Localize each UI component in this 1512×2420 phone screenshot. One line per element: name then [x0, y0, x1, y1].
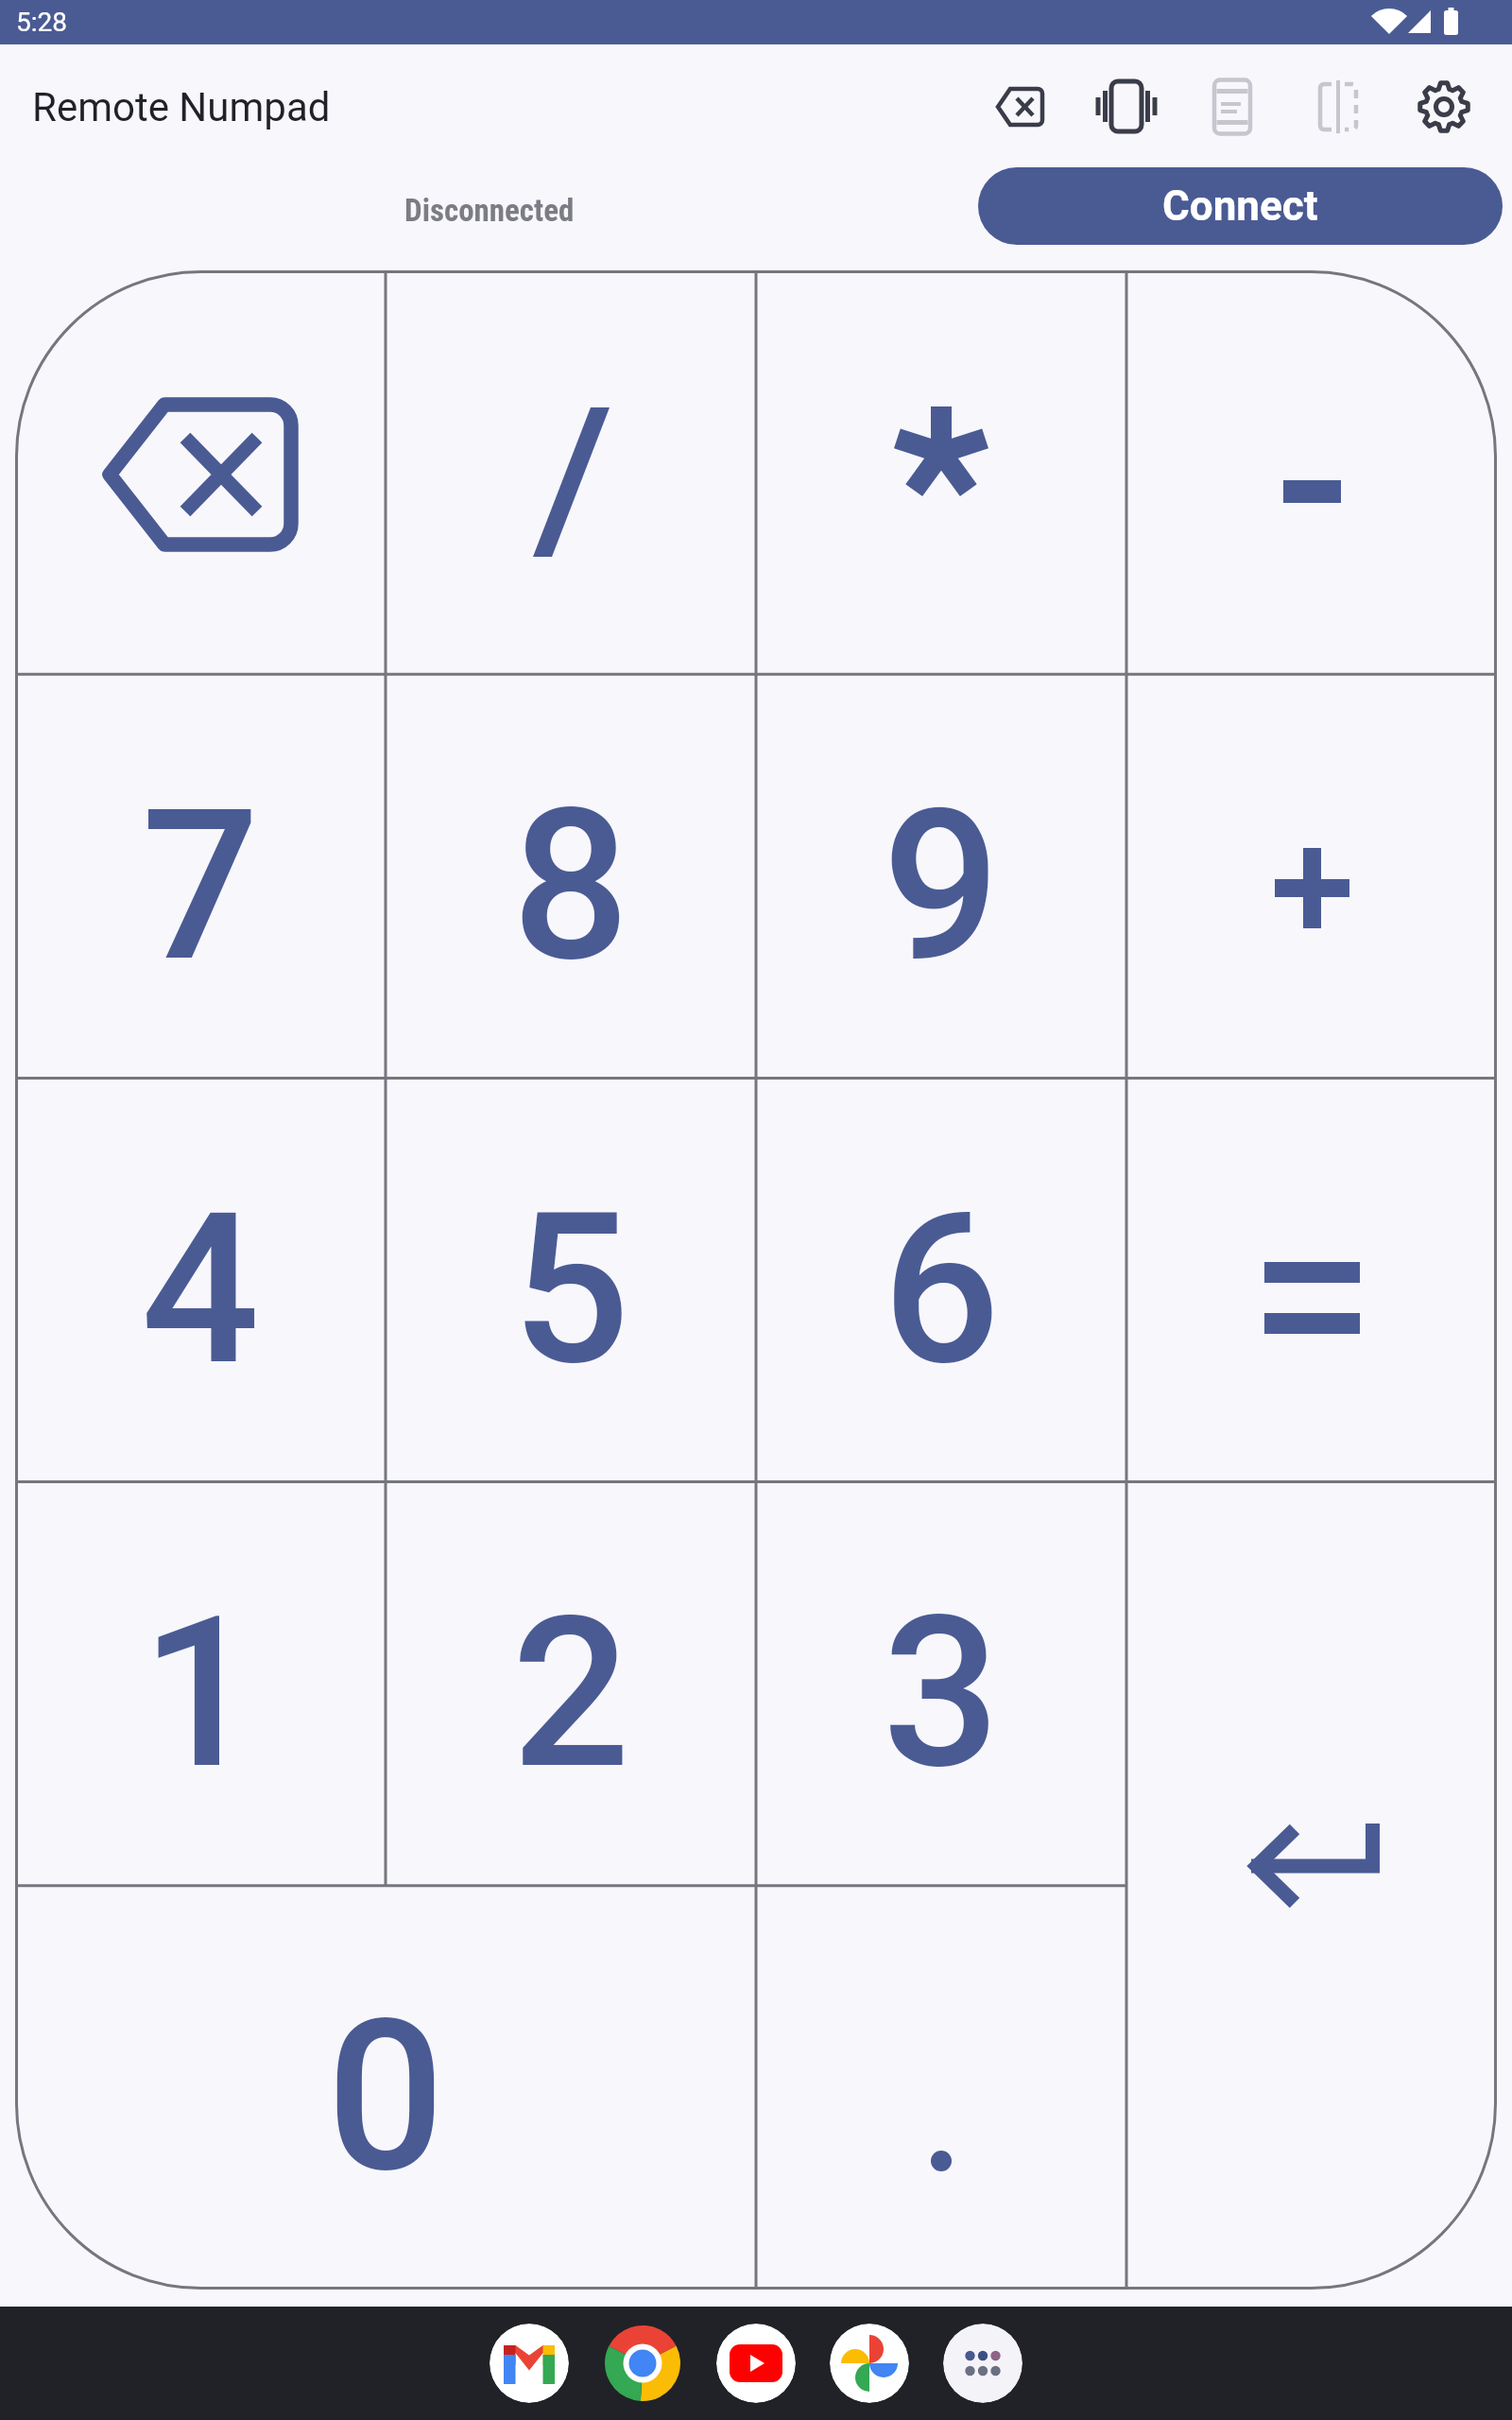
button[interactable]: [490, 2324, 569, 2403]
button[interactable]: [1391, 44, 1497, 169]
staticText: 6: [882, 1168, 1001, 1412]
button[interactable]: [1285, 44, 1391, 169]
button[interactable]: Connect: [978, 167, 1503, 245]
staticText: 0: [326, 1976, 445, 2220]
button[interactable]: [386, 270, 756, 675]
staticText: 8: [511, 765, 630, 1009]
button[interactable]: 8: [386, 675, 756, 1079]
button[interactable]: 1: [15, 1482, 386, 1886]
button[interactable]: 7: [15, 675, 386, 1079]
button[interactable]: [15, 270, 386, 675]
staticText: 1: [141, 1572, 260, 1816]
staticText: 5: [511, 1168, 630, 1412]
staticText: 9: [882, 765, 1001, 1009]
button[interactable]: 2: [386, 1482, 756, 1886]
button[interactable]: [756, 1886, 1126, 2290]
button[interactable]: [1126, 675, 1497, 1079]
staticText: 3: [882, 1572, 1001, 1816]
button[interactable]: 6: [756, 1079, 1126, 1482]
button[interactable]: [1126, 1482, 1497, 2290]
staticText: Remote Numpad: [32, 84, 331, 130]
button[interactable]: [830, 2324, 909, 2403]
button[interactable]: [603, 2324, 682, 2403]
button[interactable]: [968, 44, 1074, 169]
button[interactable]: [943, 2324, 1022, 2403]
button[interactable]: 3: [756, 1482, 1126, 1886]
staticText: 5:28: [16, 7, 67, 38]
staticText: Disconnected: [404, 192, 575, 229]
staticText: 7: [141, 765, 260, 1009]
button[interactable]: 0: [15, 1886, 756, 2290]
button[interactable]: [1126, 270, 1497, 675]
button[interactable]: [1074, 44, 1179, 169]
button[interactable]: [1179, 44, 1285, 169]
staticText: 2: [511, 1572, 630, 1816]
button[interactable]: [1126, 1079, 1497, 1482]
staticText: Connect: [1162, 181, 1318, 231]
button[interactable]: 4: [15, 1079, 386, 1482]
button[interactable]: 5: [386, 1079, 756, 1482]
button[interactable]: 9: [756, 675, 1126, 1079]
staticText: 4: [141, 1168, 260, 1412]
button[interactable]: [716, 2324, 796, 2403]
button[interactable]: [756, 270, 1126, 675]
